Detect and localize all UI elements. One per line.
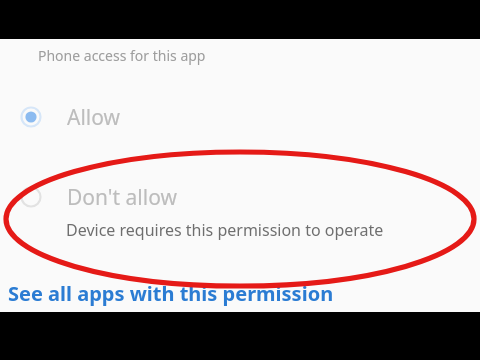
- staticText: Allow: [67, 103, 121, 132]
- button[interactable]: Don't allow: [0, 175, 480, 241]
- staticText: Device requires this permission to opera…: [66, 219, 480, 241]
- staticText: Don't allow: [67, 183, 177, 212]
- staticText: Phone access for this app: [38, 46, 206, 65]
- button[interactable]: Allow: [0, 94, 480, 140]
- staticText: See all apps with this permission: [8, 280, 334, 307]
- button[interactable]: See all apps with this permission: [0, 277, 480, 309]
